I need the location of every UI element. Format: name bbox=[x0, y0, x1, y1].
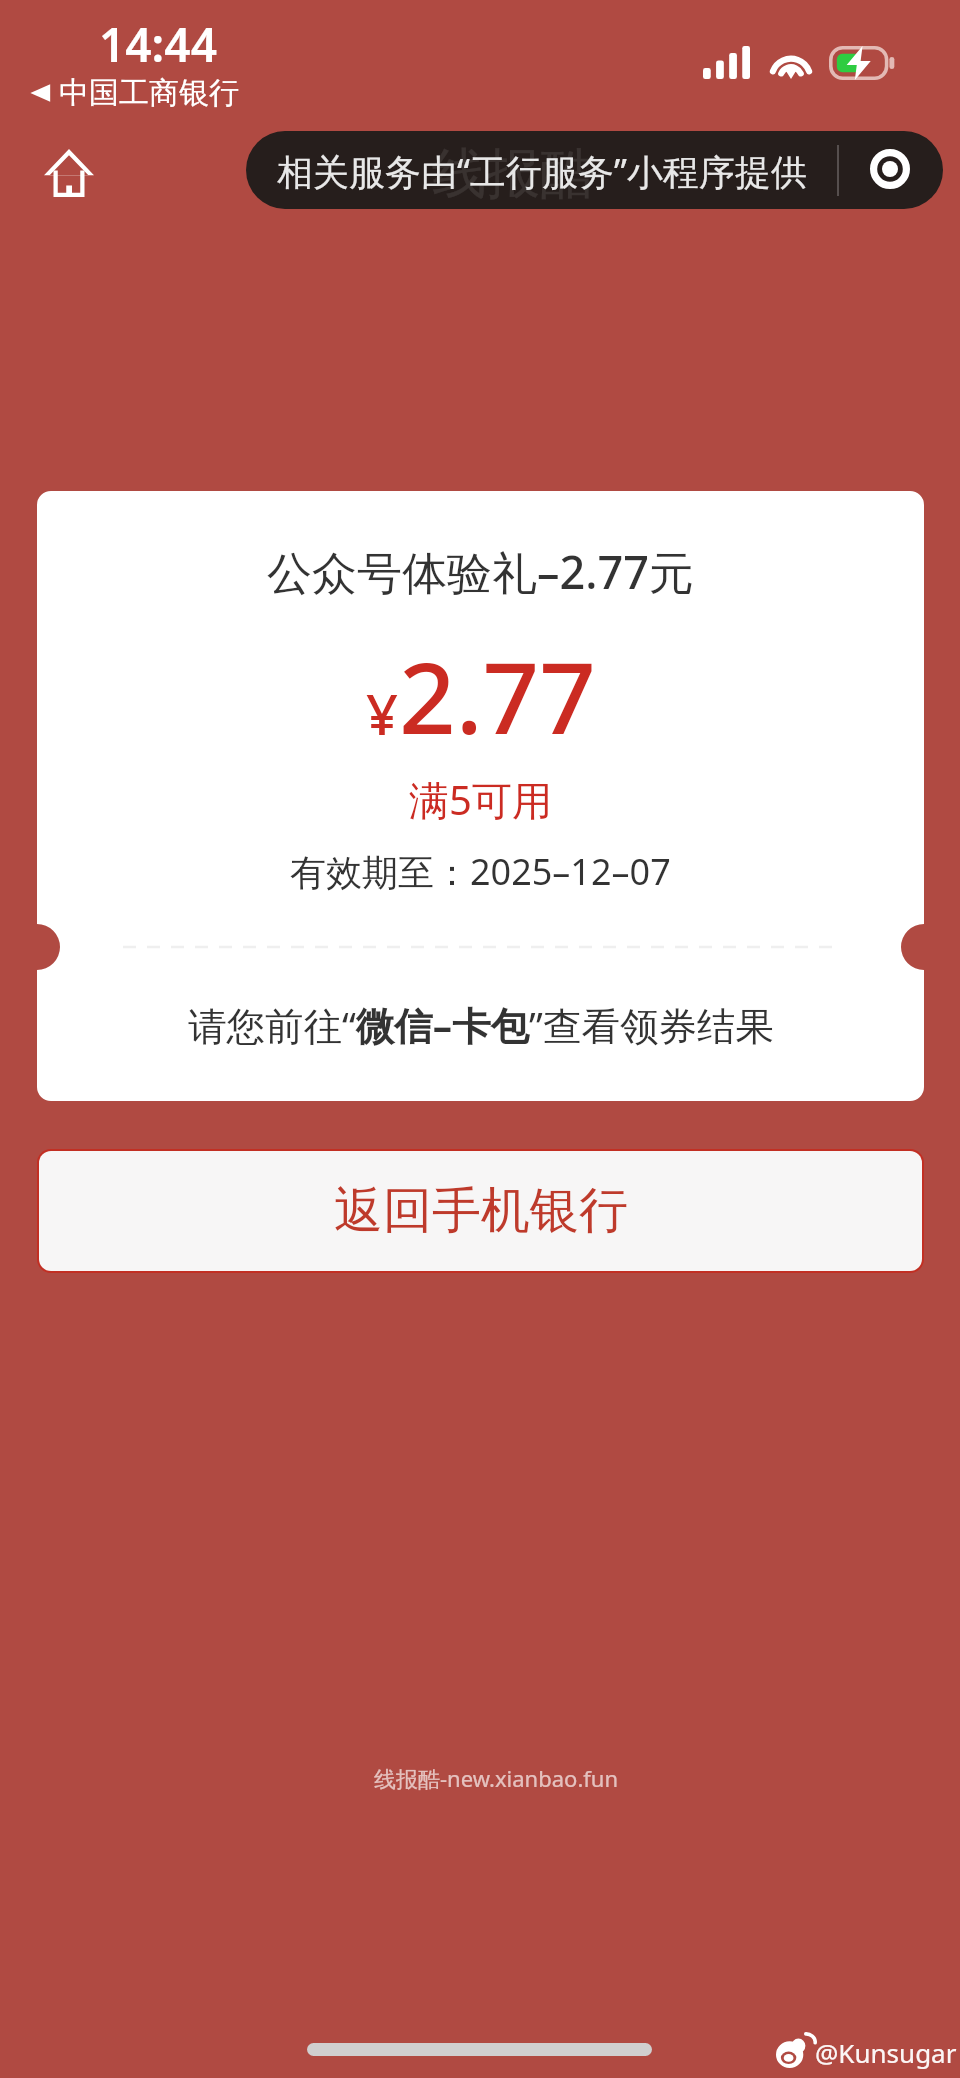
staticText: 2.77 bbox=[399, 628, 596, 763]
staticText: @Kunsugar bbox=[815, 2035, 957, 2070]
staticText: 有效期至：2025–12–07 bbox=[290, 847, 671, 896]
button[interactable]: Home bbox=[30, 134, 108, 212]
staticText: 中国工商银行 bbox=[59, 74, 239, 112]
staticText: 满5可用 bbox=[409, 772, 552, 827]
staticText: 返回手机银行 bbox=[334, 1180, 628, 1242]
staticText: 相关服务由“工行服务”小程序提供 bbox=[277, 147, 807, 196]
staticText: ¥ bbox=[366, 675, 399, 751]
staticText: 请您前往“微信–卡包”查看领券结果 bbox=[188, 999, 774, 1052]
staticText: 线报酷-new.xianbao.fun bbox=[374, 1763, 619, 1793]
staticText: 线报酷 bbox=[432, 140, 594, 208]
staticText: 14:44 bbox=[99, 13, 217, 76]
button[interactable]: 线报酷 bbox=[246, 131, 943, 209]
staticText: 公众号体验礼–2.77元 bbox=[267, 541, 694, 602]
button[interactable]: 返回手机银行 bbox=[39, 1151, 922, 1271]
